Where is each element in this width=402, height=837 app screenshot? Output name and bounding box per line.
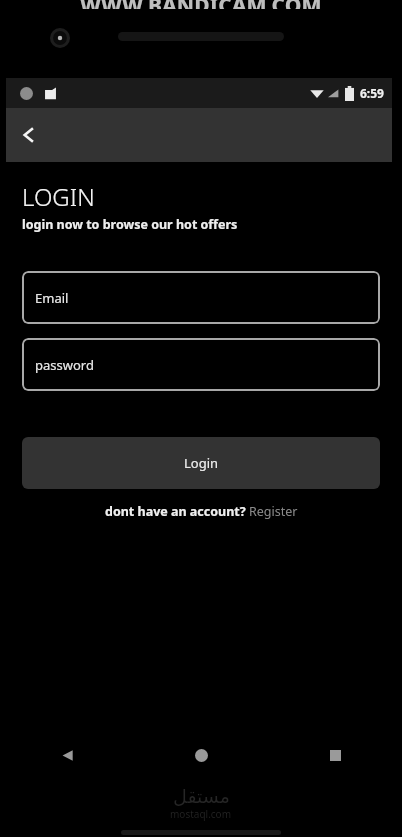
staticText: 6:59 (360, 85, 384, 101)
button[interactable]: Email (22, 271, 380, 324)
button[interactable]: Back (0, 738, 134, 772)
button[interactable]: password (22, 338, 380, 391)
staticText: Register (249, 503, 298, 520)
staticText: login now to browse our hot offers (22, 216, 238, 233)
staticText: مستقل (173, 785, 230, 807)
button[interactable]: dont have an account? (22, 503, 380, 520)
staticText: Login (184, 454, 219, 472)
staticText: dont have an account? (105, 503, 249, 520)
button[interactable]: Home (134, 738, 268, 772)
staticText: mostaql.com (170, 807, 232, 821)
staticText: Email (35, 289, 69, 307)
button[interactable]: Login (22, 437, 380, 489)
staticText: LOGIN (22, 180, 95, 213)
button[interactable]: Back (6, 112, 52, 158)
staticText: WWW.BANDICAM.COM (80, 0, 322, 9)
button[interactable]: Recent apps (268, 738, 402, 772)
staticText: password (35, 356, 94, 374)
